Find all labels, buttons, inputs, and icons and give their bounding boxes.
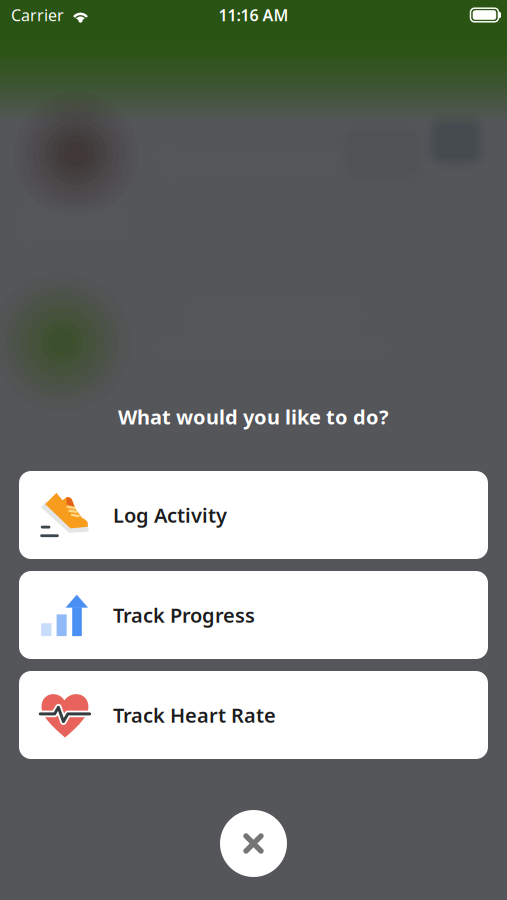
staticText: 11:16 AM — [218, 4, 288, 26]
staticText: Track Heart Rate — [113, 702, 276, 728]
staticText: Carrier — [11, 4, 64, 26]
staticText: What would you like to do? — [118, 403, 389, 430]
staticText: Log Activity — [113, 502, 227, 528]
staticText: Track Progress — [113, 602, 255, 628]
button[interactable]: Log Activity — [19, 471, 488, 559]
button[interactable]: Track Progress — [19, 571, 488, 659]
button[interactable]: Track Heart Rate — [19, 671, 488, 759]
button[interactable]: Close — [220, 810, 287, 877]
